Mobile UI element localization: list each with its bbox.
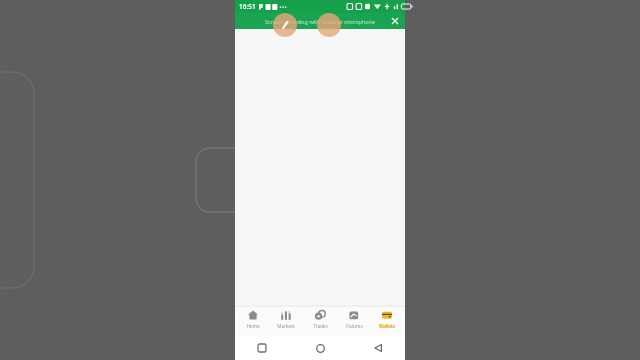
staticText: Trades <box>313 323 328 329</box>
staticText: Screen recording with audio or microphon… <box>257 18 383 25</box>
button[interactable]: Home <box>311 339 329 357</box>
button[interactable]: Wallets <box>371 306 403 336</box>
staticText: 16:51 <box>239 2 256 11</box>
button[interactable]: Recent apps <box>253 339 271 357</box>
button[interactable]: Trades <box>304 306 336 336</box>
button[interactable]: Futures <box>338 306 370 336</box>
button[interactable]: Back <box>369 339 387 357</box>
staticText: Futures <box>346 323 363 329</box>
staticText: Wallets <box>379 323 395 329</box>
button[interactable]: Screen recording with audio or microphon… <box>235 13 405 29</box>
staticText: Markets <box>277 323 295 329</box>
staticText: Home <box>246 323 260 329</box>
button[interactable]: Markets <box>270 306 302 336</box>
button[interactable]: Home <box>237 306 269 336</box>
button[interactable]: Close <box>389 15 401 27</box>
